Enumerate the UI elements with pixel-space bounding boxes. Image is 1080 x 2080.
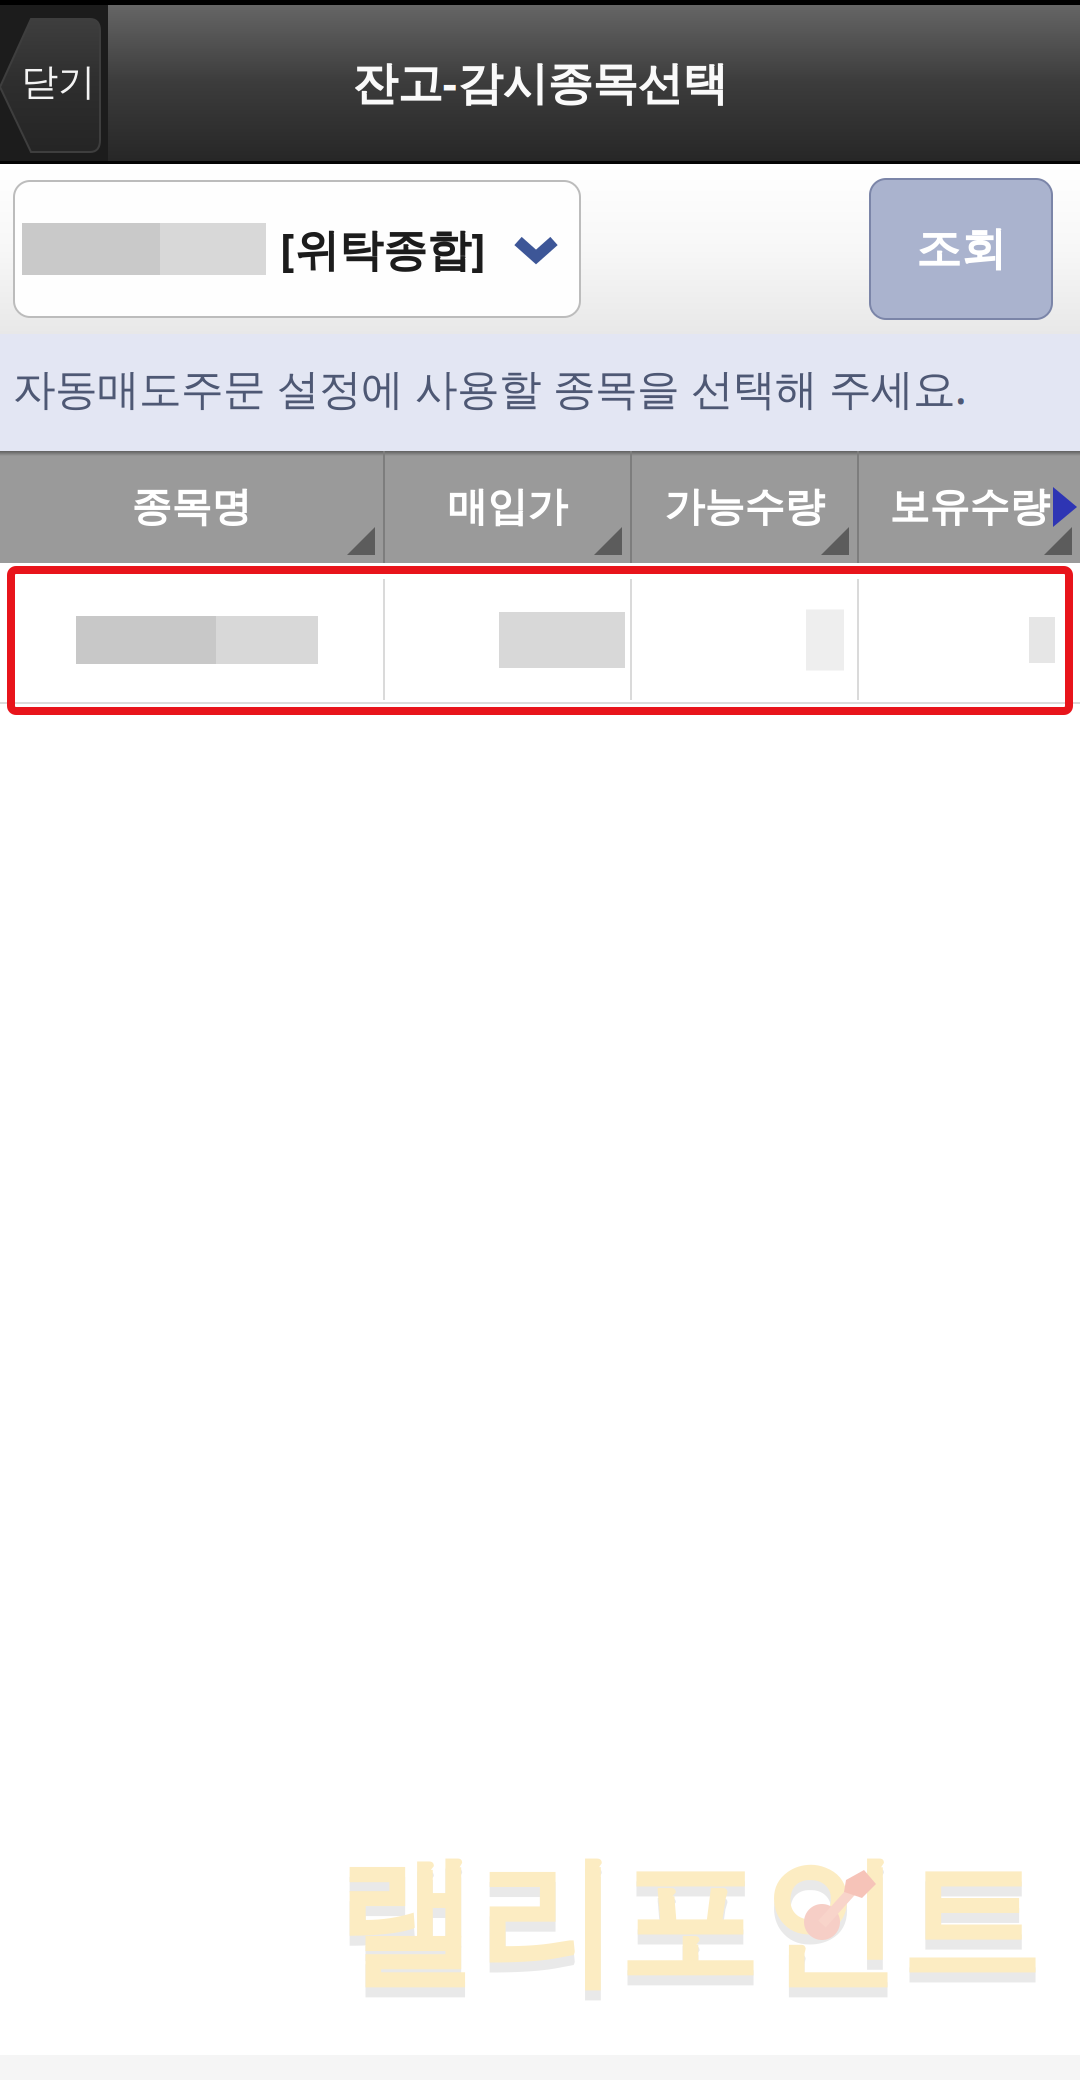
staticText: 보유수량 — [889, 482, 1049, 531]
button[interactable]: 닫기 — [0, 0, 108, 164]
staticText: 종목명 — [131, 482, 251, 531]
button[interactable]: 매입가 — [385, 451, 630, 563]
button[interactable]: 더 보기 — [1052, 486, 1078, 528]
staticText: 자동매도주문 설정에 사용할 종목을 선택해 주세요. — [13, 360, 967, 416]
button[interactable] — [0, 563, 1080, 702]
button[interactable]: 보유수량 — [859, 451, 1080, 563]
button[interactable]: 조회 — [870, 179, 1052, 319]
button[interactable]: 가능수량 — [632, 451, 857, 563]
staticText: 랠리포인트 — [335, 1836, 1040, 2010]
staticText: 조회 — [916, 221, 1006, 277]
staticText: 닫기 — [21, 59, 95, 105]
staticText: 가능수량 — [664, 482, 824, 531]
staticText: 잔고-감시종목선택 — [352, 52, 727, 112]
button[interactable]: [위탁종합] — [14, 181, 580, 317]
staticText: [위탁종합] — [280, 220, 486, 278]
staticText: 랠리포인트 — [335, 1846, 1040, 2020]
staticText: 매입가 — [447, 482, 567, 531]
button[interactable]: 종목명 — [0, 451, 383, 563]
